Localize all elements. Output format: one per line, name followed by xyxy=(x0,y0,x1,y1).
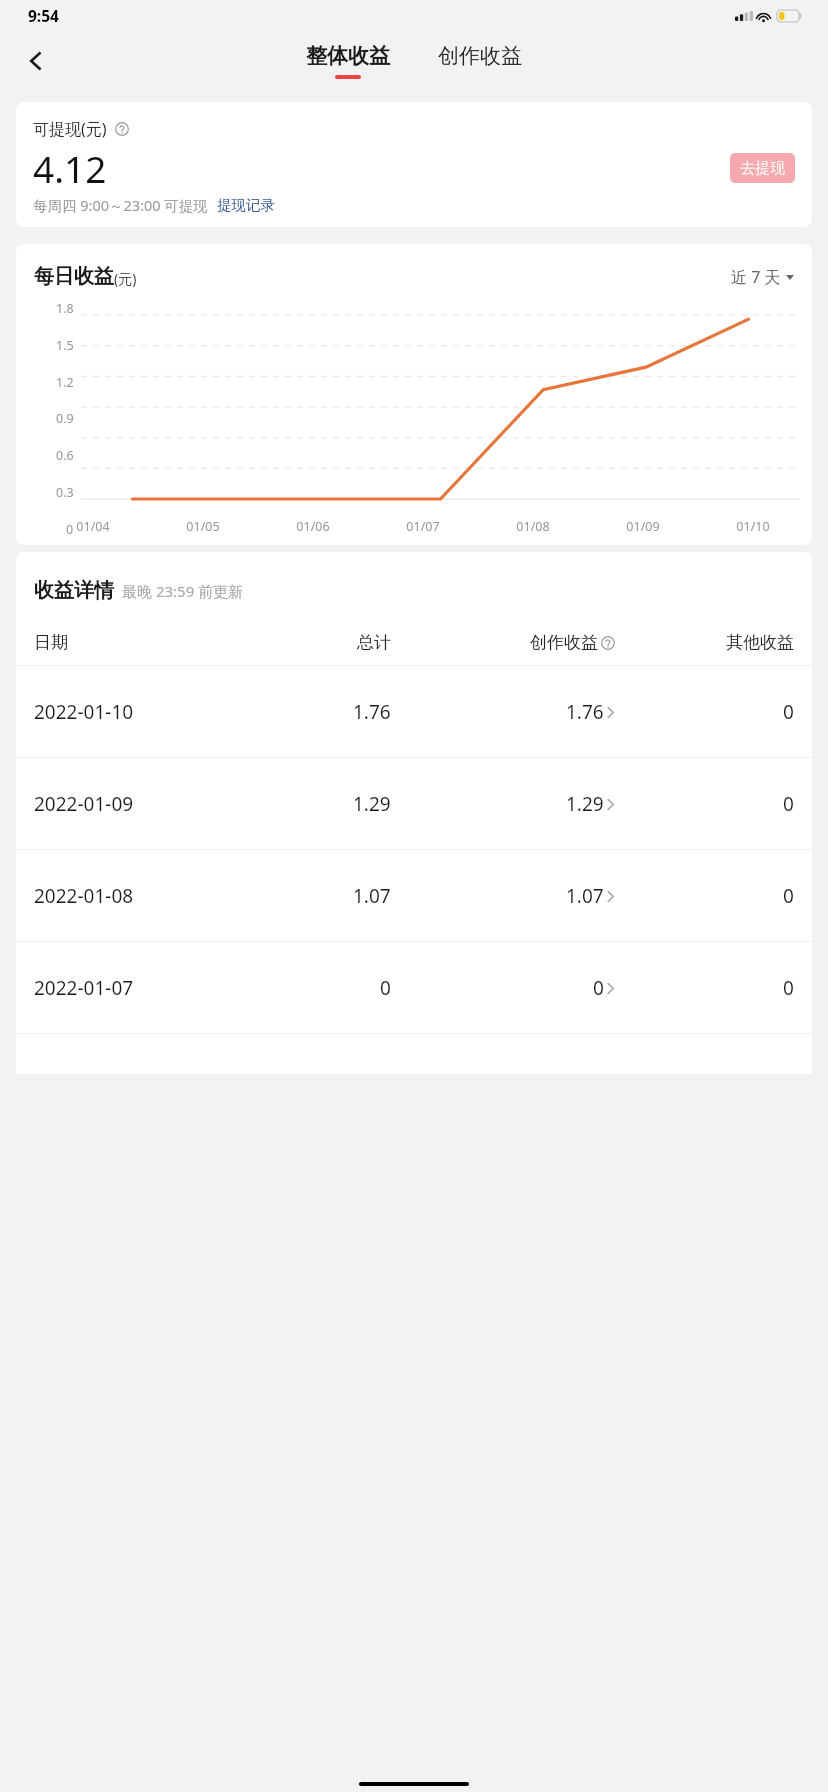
staticText: (元) xyxy=(114,269,137,288)
staticText: 2022-01-07 xyxy=(34,975,134,1001)
staticText: 9:54 xyxy=(28,5,59,26)
staticText: 0 xyxy=(593,975,604,1001)
staticText: 1.2 xyxy=(56,374,74,391)
staticText: 0.9 xyxy=(56,410,74,427)
staticText: 1.76 xyxy=(353,699,391,725)
staticText: 日期 xyxy=(34,632,68,653)
staticText: 2022-01-09 xyxy=(34,791,134,817)
button[interactable]: 近 7 天 xyxy=(731,266,794,288)
staticText: 最晚 23:59 前更新 xyxy=(122,581,244,601)
staticText: 0 xyxy=(783,699,794,725)
button[interactable]: 2022-01-07 xyxy=(16,942,812,1033)
staticText: 01/06 xyxy=(296,518,330,535)
staticText: 收益详情 xyxy=(34,578,114,603)
staticText: 整体收益 xyxy=(306,43,390,69)
staticText: 01/05 xyxy=(186,518,220,535)
staticText: 0.3 xyxy=(56,484,74,501)
staticText: 4.12 xyxy=(33,143,107,193)
staticText: 01/04 xyxy=(76,518,110,535)
staticText: 01/07 xyxy=(406,518,440,535)
staticText: 0.6 xyxy=(56,447,74,464)
staticText: 0 xyxy=(783,975,794,1001)
staticText: 0 xyxy=(783,883,794,909)
button[interactable]: 2022-01-08 xyxy=(16,850,812,941)
staticText: 01/10 xyxy=(736,518,770,535)
staticText: 0 xyxy=(783,791,794,817)
staticText: 2022-01-10 xyxy=(34,699,134,725)
button[interactable]: 2022-01-09 xyxy=(16,758,812,849)
button[interactable]: 去提现 xyxy=(730,153,795,183)
staticText: 1.07 xyxy=(353,883,391,909)
staticText: 01/09 xyxy=(626,518,660,535)
staticText: 每日收益 xyxy=(34,264,114,289)
staticText: 1.76 xyxy=(566,699,604,725)
button[interactable]: 提现记录 xyxy=(217,196,275,214)
staticText: 提现记录 xyxy=(217,196,275,214)
staticText: 创作收益 xyxy=(530,632,598,653)
staticText: 创作收益 xyxy=(438,43,522,69)
staticText: 1.8 xyxy=(56,300,74,317)
staticText: 2022-01-08 xyxy=(34,883,134,909)
staticText: 1.29 xyxy=(353,791,391,817)
button[interactable]: 创作收益 xyxy=(428,39,532,83)
staticText: 每周四 9:00～23:00 可提现 xyxy=(33,195,208,215)
button[interactable]: 2022-01-10 xyxy=(16,666,812,757)
staticText: 总计 xyxy=(357,632,391,653)
staticText: 近 7 天 xyxy=(731,266,781,288)
staticText: 其他收益 xyxy=(726,632,794,653)
button[interactable]: 整体收益 xyxy=(296,39,400,83)
staticText: 1.5 xyxy=(56,337,74,354)
staticText: 可提现(元) xyxy=(33,118,107,140)
button[interactable]: Help xyxy=(112,119,132,139)
staticText: 0 xyxy=(380,975,391,1001)
staticText: 0 xyxy=(66,521,74,538)
staticText: 01/08 xyxy=(516,518,550,535)
button[interactable]: Back xyxy=(14,39,58,83)
staticText: 1.07 xyxy=(566,883,604,909)
staticText: 1.29 xyxy=(566,791,604,817)
staticText: 去提现 xyxy=(740,159,785,178)
